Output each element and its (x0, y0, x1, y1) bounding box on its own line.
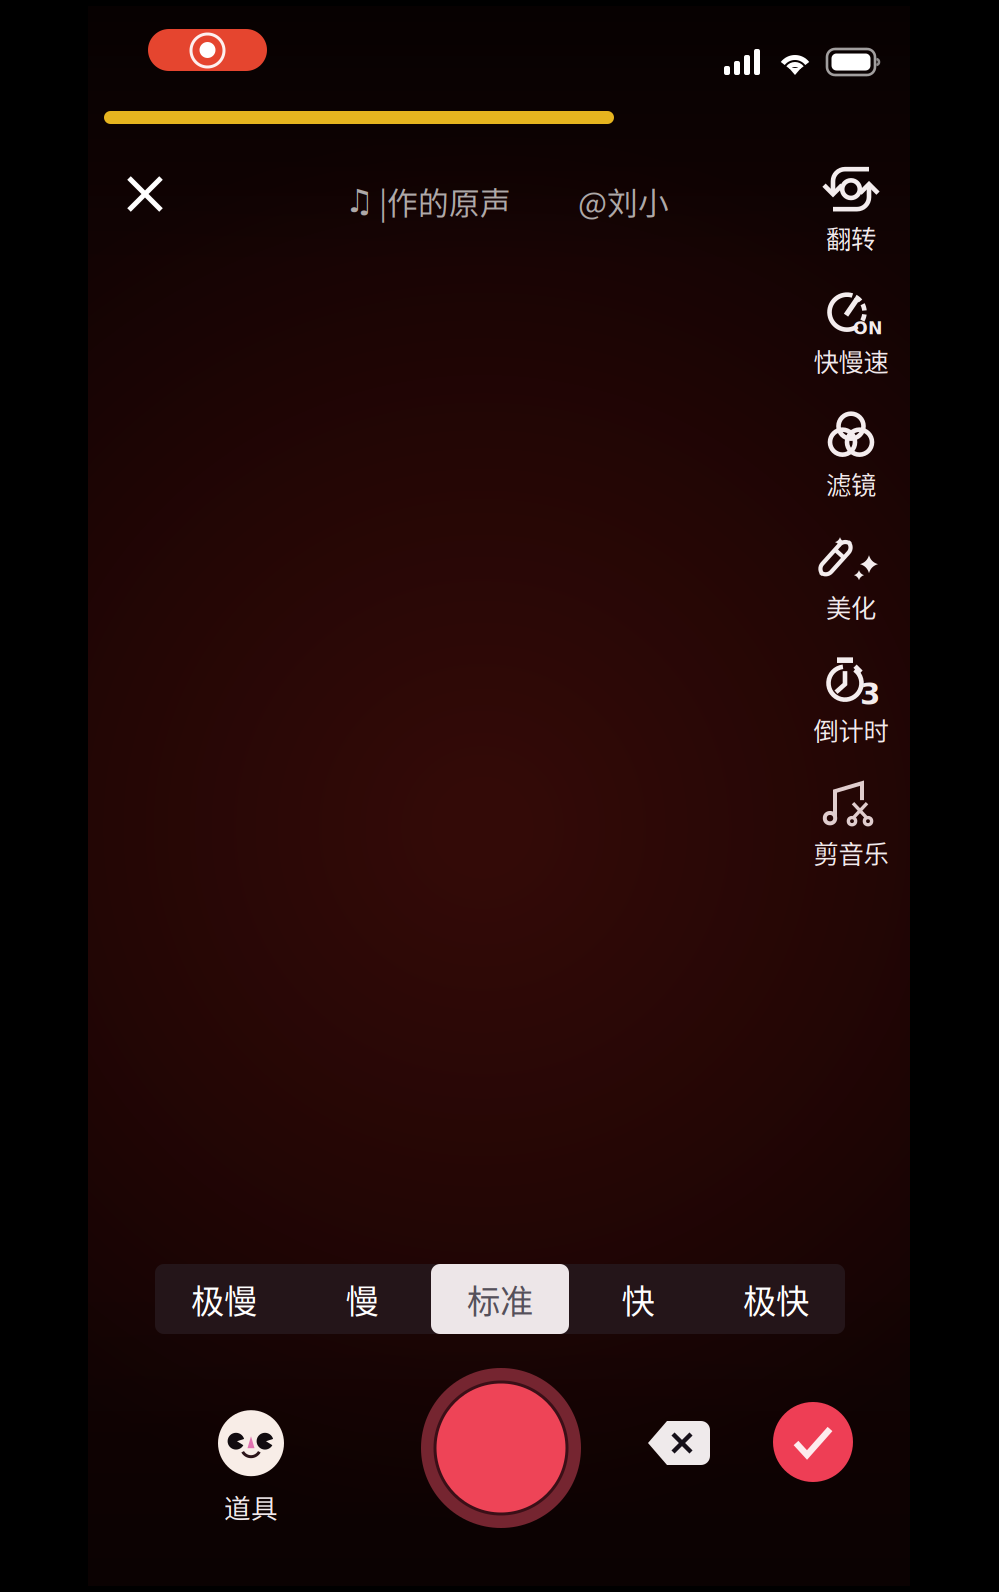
button[interactable]: 完成 (773, 1402, 853, 1482)
staticText: 美化 (826, 588, 876, 625)
button[interactable]: ON (799, 293, 903, 373)
button[interactable]: 剪音乐 (799, 785, 903, 865)
button[interactable]: 关闭 (110, 159, 180, 229)
button[interactable]: 标准 (431, 1264, 569, 1334)
button[interactable]: 滤镜 (799, 416, 903, 496)
staticText: 道具 (224, 1487, 278, 1526)
staticText: 极慢 (191, 1275, 257, 1323)
button[interactable]: 删除 (647, 1419, 711, 1467)
staticText: 滤镜 (826, 465, 876, 502)
button[interactable]: 美化 (799, 539, 903, 619)
staticText: 剪音乐 (813, 834, 888, 871)
button[interactable]: 极慢 (155, 1264, 293, 1334)
button[interactable]: 极快 (707, 1264, 845, 1334)
staticText: 翻转 (826, 219, 876, 256)
button[interactable]: 慢 (293, 1264, 431, 1334)
staticText: 极快 (743, 1275, 809, 1323)
staticText: 倒计时 (813, 711, 888, 748)
button[interactable]: 快 (569, 1264, 707, 1334)
button[interactable]: 3 (799, 662, 903, 742)
button[interactable]: 录制 (421, 1368, 581, 1528)
staticText: |作的原声 (379, 179, 511, 223)
staticText: 快 (621, 1275, 654, 1323)
staticText: ON (853, 318, 883, 338)
button[interactable]: 录屏中 (148, 29, 267, 71)
staticText: ♫ (345, 183, 374, 220)
staticText: @刘小 (578, 179, 669, 223)
button[interactable]: 道具 (196, 1417, 306, 1519)
staticText: 标准 (467, 1275, 533, 1323)
staticText: 快慢速 (813, 342, 888, 379)
staticText: 慢 (345, 1275, 378, 1323)
button[interactable]: 翻转 (799, 170, 903, 250)
staticText: 3 (860, 677, 880, 711)
